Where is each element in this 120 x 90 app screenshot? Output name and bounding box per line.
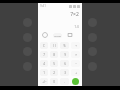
staticText: 2	[53, 71, 55, 75]
button[interactable]: Delete	[67, 32, 73, 38]
button[interactable]: 7	[40, 51, 48, 58]
staticText: 9	[64, 53, 66, 57]
staticText: 7×2	[70, 11, 79, 18]
staticText: ( )	[53, 44, 56, 48]
button[interactable]: mode	[53, 33, 62, 38]
staticText: +	[75, 71, 77, 75]
staticText: 0	[53, 80, 55, 84]
staticText: 3	[64, 71, 66, 75]
button[interactable]: 5	[50, 60, 58, 67]
button[interactable]: 8	[50, 51, 58, 58]
button[interactable]: +	[71, 69, 80, 76]
button[interactable]: 1	[40, 69, 48, 76]
staticText: %	[63, 44, 66, 48]
button[interactable]: −	[71, 60, 80, 67]
staticText: 14	[74, 24, 79, 29]
button[interactable]: C	[40, 42, 48, 49]
staticText: 9:41	[40, 4, 46, 8]
button[interactable]: 2	[50, 69, 58, 76]
button[interactable]: %	[60, 42, 69, 49]
staticText: 6	[64, 62, 66, 66]
button[interactable]: 4	[40, 60, 48, 67]
staticText: 7	[43, 53, 45, 57]
button[interactable]: 3	[60, 69, 69, 76]
button[interactable]: ÷	[71, 42, 80, 49]
button[interactable]: 0	[50, 78, 58, 85]
staticText: ÷	[75, 44, 77, 48]
button[interactable]: ( )	[50, 42, 58, 49]
staticText: C	[43, 44, 45, 48]
staticText: mode	[54, 34, 61, 37]
staticText: +/−	[42, 80, 47, 84]
button[interactable]: ×	[71, 51, 80, 58]
button[interactable]: 9	[60, 51, 69, 58]
staticText: −	[75, 62, 77, 66]
button[interactable]: History	[42, 32, 48, 38]
staticText: ×	[75, 53, 77, 57]
button[interactable]: +/−	[40, 78, 48, 85]
staticText: 1	[43, 71, 45, 75]
staticText: 4	[43, 62, 45, 66]
staticText: 5	[53, 62, 55, 66]
button[interactable]: 6	[60, 60, 69, 67]
button[interactable]: Equals	[72, 78, 79, 85]
staticText: .	[64, 80, 65, 84]
staticText: 8	[53, 53, 55, 57]
